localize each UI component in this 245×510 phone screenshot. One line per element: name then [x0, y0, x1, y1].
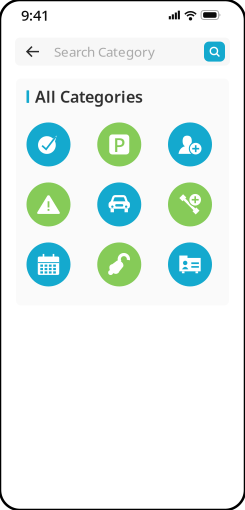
- staticText: Search Category: [54, 43, 155, 60]
- button[interactable]: Checked: [26, 122, 70, 166]
- button[interactable]: Alerts: [26, 182, 70, 226]
- staticText: All Categories: [35, 86, 143, 107]
- button[interactable]: Car: [97, 182, 141, 226]
- button[interactable]: Add Person: [168, 122, 212, 166]
- button[interactable]: Parking: [97, 122, 141, 166]
- button[interactable]: Back: [20, 38, 46, 66]
- button[interactable]: Service: [97, 242, 141, 286]
- staticText: 9:41: [21, 5, 49, 25]
- button[interactable]: ID Card: [168, 242, 212, 286]
- button[interactable]: Calendar: [26, 242, 70, 286]
- button[interactable]: Emergency Call: [168, 182, 212, 226]
- staticText: P: [113, 131, 125, 158]
- button[interactable]: Search: [204, 42, 225, 62]
